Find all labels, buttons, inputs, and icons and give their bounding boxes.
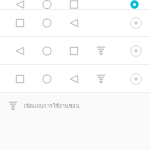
button[interactable]: Navigation bar layout option	[0, 37, 150, 64]
button[interactable]: Navigation bar layout option	[0, 0, 150, 9]
button[interactable]: เปิดแถบการใช้งานซ่อน	[0, 93, 150, 119]
button[interactable]: Navigation bar layout option	[0, 65, 150, 92]
staticText: เปิดแถบการใช้งานซ่อน	[24, 102, 80, 111]
button[interactable]: Navigation bar layout option	[0, 10, 150, 36]
